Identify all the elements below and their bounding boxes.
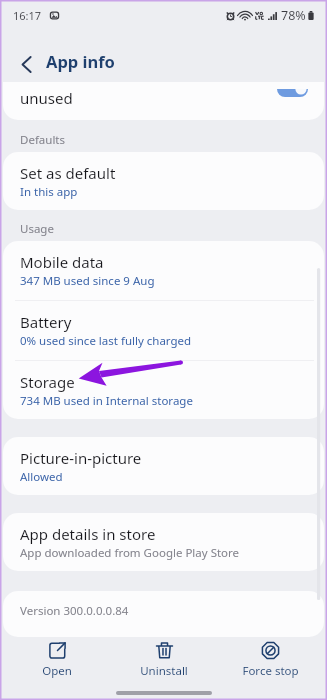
staticText: Set as default [20, 163, 116, 183]
button[interactable]: Picture-in-picture [3, 437, 324, 495]
staticText: 0% used since last fully charged [20, 333, 192, 349]
button[interactable]: Battery [3, 301, 324, 361]
staticText: 16:17 [13, 8, 42, 23]
button[interactable]: Back [0, 44, 46, 78]
button[interactable]: Uninstall [114, 640, 214, 684]
staticText: Storage [20, 372, 75, 392]
staticText: Force stop [242, 663, 299, 679]
staticText: Defaults [20, 132, 66, 148]
button[interactable]: Open [7, 640, 107, 684]
staticText: Battery [20, 312, 72, 332]
staticText: unused [20, 88, 73, 108]
staticText: Picture-in-picture [20, 448, 142, 468]
button[interactable]: Set as default [3, 152, 324, 210]
staticText: Mobile data [20, 252, 104, 272]
staticText: App info [46, 50, 115, 72]
button[interactable]: Mobile data [3, 241, 324, 301]
button[interactable]: Force stop [220, 640, 320, 684]
staticText: Version 300.0.0.0.84 [20, 603, 129, 619]
staticText: Allowed [20, 469, 63, 485]
staticText: Uninstall [140, 663, 188, 679]
staticText: App details in store [20, 524, 156, 544]
staticText: Usage [20, 221, 54, 237]
staticText: Open [42, 663, 72, 679]
button[interactable]: App details in store [3, 513, 324, 571]
staticText: 734 MB used in Internal storage [20, 393, 193, 409]
staticText: App downloaded from Google Play Store [20, 545, 240, 561]
staticText: 347 MB used since 9 Aug [20, 273, 155, 289]
button[interactable]: unused [3, 82, 324, 120]
button[interactable]: Storage [3, 361, 324, 419]
staticText: In this app [20, 184, 78, 200]
staticText: 78% [281, 7, 306, 24]
